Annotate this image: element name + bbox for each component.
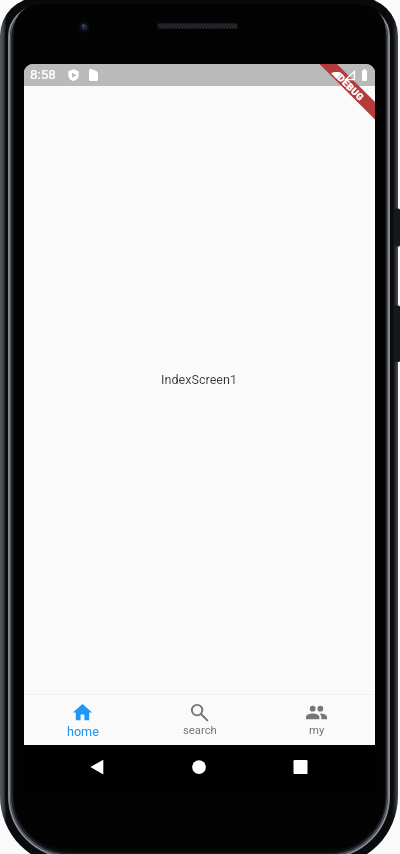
button[interactable]: my bbox=[258, 695, 375, 745]
button[interactable]: home bbox=[24, 695, 141, 745]
staticText: 8:58 bbox=[30, 67, 56, 83]
staticText: search bbox=[183, 724, 217, 737]
button[interactable]: search bbox=[141, 695, 258, 745]
staticText: IndexScreen1 bbox=[161, 372, 238, 387]
staticText: DEBUG bbox=[335, 72, 366, 103]
staticText: home bbox=[67, 724, 99, 739]
staticText: my bbox=[309, 724, 325, 737]
